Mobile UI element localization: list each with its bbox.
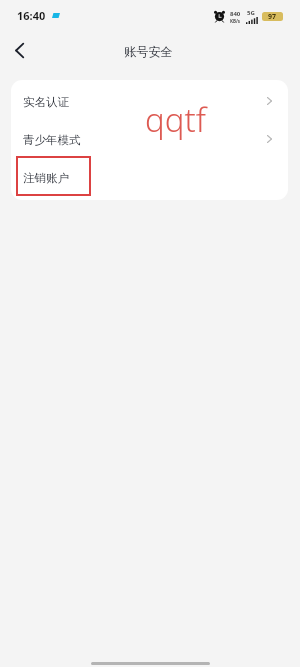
button[interactable]: 实名认证 xyxy=(11,83,288,121)
staticText: KB/s xyxy=(230,18,241,24)
button[interactable]: Back xyxy=(0,30,39,70)
button[interactable]: 青少年模式 xyxy=(11,121,288,159)
staticText: 注销账户 xyxy=(23,171,69,185)
staticText: 实名认证 xyxy=(23,95,69,109)
button[interactable]: 注销账户 xyxy=(11,159,288,197)
staticText: qqtf xyxy=(145,97,206,142)
staticText: 16:40 xyxy=(17,8,46,23)
staticText: 840 xyxy=(230,10,241,18)
staticText: 97 xyxy=(268,12,277,21)
staticText: 账号安全 xyxy=(124,44,173,59)
staticText: 5G xyxy=(247,9,255,17)
staticText: 青少年模式 xyxy=(23,133,81,147)
